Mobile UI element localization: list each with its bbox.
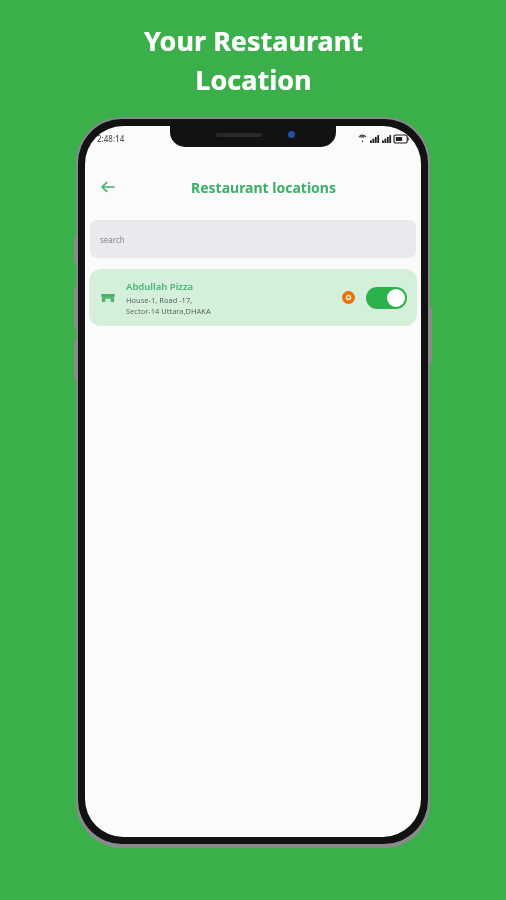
button[interactable]: search — [90, 220, 416, 258]
staticText: Abdullah Pizza — [126, 280, 194, 293]
button[interactable]: Abdullah Pizza — [89, 269, 417, 326]
staticText: Location — [195, 61, 312, 98]
button[interactable]: Back — [93, 172, 123, 202]
staticText: Restaurant locations — [191, 178, 336, 197]
staticText: Sector-14 Uttara,DHAKA — [126, 306, 211, 316]
staticText: 2:48:14 — [97, 133, 125, 144]
staticText: search — [100, 234, 125, 245]
button[interactable]: Toggle location active — [366, 287, 407, 309]
staticText: Your Restaurant — [144, 22, 363, 59]
button[interactable]: Settings — [342, 291, 355, 304]
staticText: House-1, Road -17, — [126, 295, 193, 305]
